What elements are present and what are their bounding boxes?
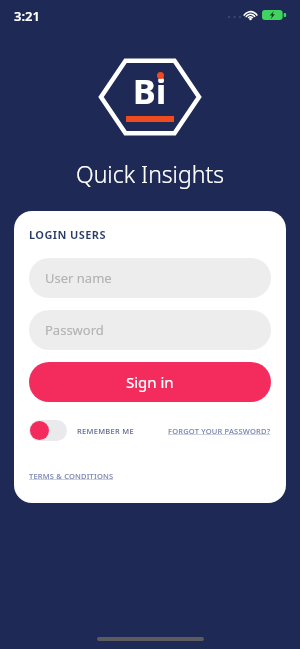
button[interactable]: FORGOT YOUR PASSWORD? bbox=[168, 426, 271, 436]
staticText: Sign in bbox=[126, 372, 174, 392]
staticText: B bbox=[133, 68, 156, 114]
staticText: Password bbox=[45, 321, 104, 339]
button[interactable]: TERMS & CONDITIONS bbox=[29, 471, 114, 481]
staticText: Quick Insights bbox=[0, 158, 300, 189]
button[interactable]: User name bbox=[29, 258, 271, 298]
staticText: User name bbox=[45, 269, 112, 287]
staticText: REMEMBER ME bbox=[77, 426, 134, 436]
button[interactable]: Remember me toggle bbox=[29, 420, 67, 441]
staticText: 3:21 bbox=[14, 7, 40, 25]
button[interactable]: Sign in bbox=[29, 362, 271, 402]
staticText: LOGIN USERS bbox=[29, 227, 106, 242]
staticText: i bbox=[156, 68, 167, 114]
staticText: TERMS & CONDITIONS bbox=[29, 471, 114, 481]
button[interactable]: Password bbox=[29, 310, 271, 350]
staticText: FORGOT YOUR PASSWORD? bbox=[168, 426, 271, 436]
